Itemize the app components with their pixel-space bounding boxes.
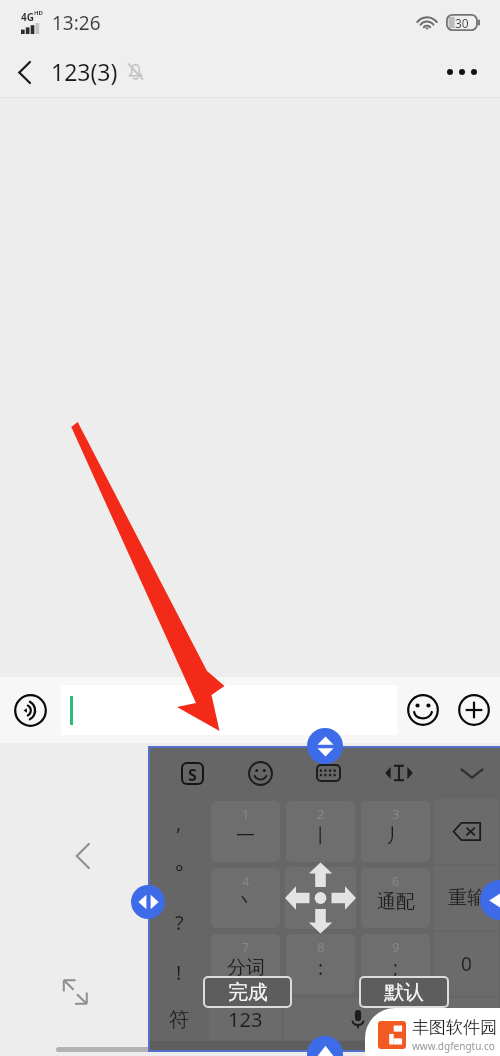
button[interactable]: Cursor controls (378, 752, 420, 794)
button[interactable]: 8 (286, 934, 355, 994)
button[interactable]: 重输 (434, 866, 499, 930)
staticText: ° (175, 859, 184, 886)
staticText: ! (176, 959, 182, 986)
staticText: 1 (242, 805, 250, 823)
button[interactable]: Direction pad (285, 867, 356, 929)
button[interactable]: 0 (434, 932, 499, 996)
button[interactable]: Voice input (284, 998, 432, 1040)
button[interactable]: 默认 (359, 976, 449, 1008)
staticText: 9 (392, 938, 400, 956)
staticText: HD (34, 9, 43, 17)
button[interactable]: Sogou input (173, 754, 211, 792)
staticText: 分词 (227, 956, 265, 980)
button[interactable]: 4 (211, 868, 280, 928)
staticText: 3 (392, 805, 400, 823)
staticText: 丨 (311, 824, 330, 848)
staticText: ; (393, 955, 399, 981)
staticText: 丰图软件园 (412, 1017, 497, 1038)
staticText: 默认 (384, 980, 424, 1005)
button[interactable]: , (150, 798, 208, 847)
staticText: 6 (392, 872, 400, 890)
button[interactable]: 9 (361, 934, 430, 994)
button[interactable]: Resize keyboard (61, 978, 89, 1006)
button[interactable]: 3 (361, 801, 430, 862)
staticText: 4 (242, 872, 250, 890)
button[interactable]: ! (150, 947, 208, 997)
button[interactable]: Move keyboard right (480, 880, 500, 920)
button[interactable]: 1 (211, 801, 280, 862)
button[interactable]: ° (150, 847, 208, 897)
staticText: 7 (242, 938, 250, 956)
button[interactable]: Emoji (397, 677, 448, 743)
staticText: ? (175, 909, 184, 936)
staticText: : (318, 955, 324, 981)
button[interactable]: 2 (286, 801, 355, 862)
button[interactable]: 7 (211, 934, 280, 994)
button[interactable]: Emoticons (241, 754, 279, 792)
button[interactable]: Keyboard layout (309, 754, 347, 792)
button[interactable]: 符 (150, 997, 208, 1041)
staticText: 13:26 (52, 10, 101, 36)
button[interactable]: 完成 (203, 976, 292, 1008)
staticText: 123 (228, 1006, 263, 1033)
staticText: 0 (461, 951, 472, 977)
button[interactable]: Move keyboard vertically (307, 728, 343, 764)
button[interactable]: Hide keyboard (451, 752, 493, 794)
button[interactable] (434, 998, 499, 1040)
button[interactable]: Move keyboard horizontally (131, 885, 165, 919)
button[interactable]: Move keyboard down (307, 1036, 343, 1056)
button[interactable]: ? (150, 897, 208, 947)
staticText: www.dgfengtu.com (412, 1039, 500, 1053)
button[interactable]: Back (62, 836, 102, 876)
button[interactable]: Backspace (434, 799, 499, 864)
button[interactable]: Back (5, 53, 43, 91)
button[interactable]: Voice input (0, 677, 61, 743)
staticText: S (188, 764, 197, 783)
staticText: 123(3) (51, 56, 118, 87)
staticText: 8 (317, 938, 325, 956)
button[interactable]: 6 (361, 868, 430, 928)
staticText: 符 (169, 1007, 189, 1032)
staticText: 重输 (448, 886, 486, 910)
staticText: 完成 (228, 980, 268, 1005)
staticText: 一 (236, 824, 255, 848)
button[interactable]: 123 (209, 998, 282, 1040)
button[interactable]: More options (440, 50, 484, 94)
staticText: 通配 (377, 890, 415, 914)
staticText: 丿 (386, 824, 405, 848)
staticText: 丶 (236, 890, 255, 914)
staticText: 4G (21, 10, 34, 24)
staticText: 2 (317, 805, 325, 823)
staticText: , (176, 809, 182, 836)
button[interactable]: Add (448, 677, 500, 743)
button[interactable] (61, 685, 397, 735)
staticText: 30 (455, 15, 469, 31)
